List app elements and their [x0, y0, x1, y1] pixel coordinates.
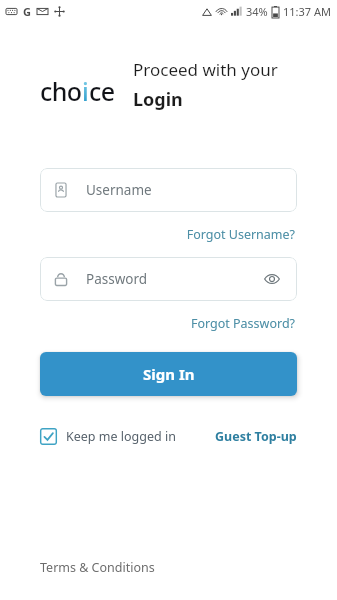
- staticText: Guest Top-up: [215, 428, 297, 445]
- button[interactable]: Show password: [261, 268, 283, 290]
- staticText: Forgot Password?: [190, 315, 295, 332]
- button[interactable]: Sign In: [40, 352, 297, 396]
- button[interactable]: Terms & Conditions: [40, 559, 155, 576]
- button[interactable]: Forgot Password?: [188, 313, 297, 334]
- staticText: Sign In: [143, 364, 195, 384]
- staticText: cho: [40, 74, 82, 108]
- staticText: ce: [89, 74, 115, 108]
- staticText: Username: [86, 181, 152, 199]
- staticText: Terms & Conditions: [40, 559, 155, 576]
- staticText: Password: [86, 270, 148, 288]
- staticText: Keep me logged in: [66, 428, 176, 445]
- staticText: Login: [133, 87, 183, 112]
- button[interactable]: Forgot Username?: [184, 224, 297, 245]
- staticText: Proceed with your: [133, 58, 278, 81]
- button[interactable]: Guest Top-up: [215, 426, 297, 447]
- button[interactable]: Username: [40, 168, 297, 212]
- button[interactable]: Password: [40, 257, 297, 301]
- button[interactable]: Keep me logged in: [40, 426, 176, 447]
- staticText: G: [23, 4, 31, 19]
- staticText: Forgot Username?: [186, 226, 295, 243]
- staticText: 11:37 AM: [283, 4, 331, 19]
- staticText: 34%: [246, 4, 268, 19]
- staticText: i: [82, 74, 89, 108]
